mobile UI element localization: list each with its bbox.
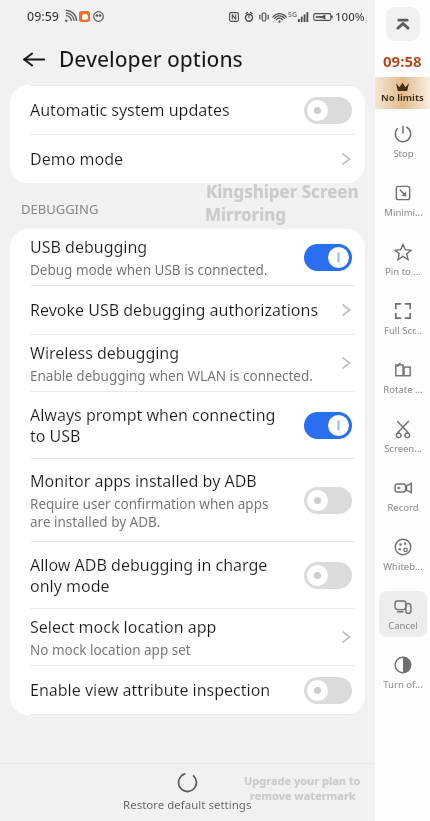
staticText: Debug mode when USB is connected. [30,261,268,279]
staticText: 09:59 [27,8,60,25]
staticText: 100% [335,9,365,25]
button[interactable]: Disabled [304,487,352,514]
staticText: Monitor apps installed by ADB [30,470,257,492]
staticText: Minimi... [384,206,423,219]
staticText: Automatic system updates [30,99,230,121]
button[interactable]: Screen... [379,414,427,460]
staticText: Cancel [388,619,418,632]
staticText: Developer options [59,45,243,74]
button[interactable]: Whiteb... [379,532,427,578]
button[interactable]: Select mock location app [10,609,365,665]
staticText: Pin to ... [385,265,421,278]
staticText: Stop [393,147,414,160]
button[interactable]: Rotate ... [379,355,427,401]
staticText: Rotate ... [383,383,423,396]
button[interactable]: Stop [379,119,427,165]
staticText: Full Scr... [384,324,422,337]
staticText: Require user confirmation when apps are … [30,495,269,531]
staticText: Record [387,501,419,514]
staticText: Revoke USB debugging authorizations [30,299,319,321]
staticText: Wireless debugging [30,342,180,364]
staticText: No mock location app set [30,641,191,659]
button[interactable]: Cancel [379,591,427,637]
button[interactable]: Disabled [304,562,352,589]
staticText: Screen... [384,442,422,455]
staticText: Always prompt when connecting to USB [30,404,276,447]
button[interactable]: Disabled [304,97,352,124]
button[interactable]: Minimi... [379,178,427,224]
staticText: Demo mode [30,148,124,170]
button[interactable]: Demo mode [10,135,365,183]
button[interactable]: Wireless debugging [10,335,365,391]
staticText: 5G [288,10,298,20]
button[interactable]: Back [13,39,53,79]
button[interactable]: Record [379,473,427,519]
staticText: Kingshiper Screen [206,180,359,203]
button[interactable]: Pin to ... [379,237,427,283]
button[interactable]: Enable view attribute inspection [10,666,365,714]
button[interactable]: Enabled [304,412,352,439]
staticText: Mirroring [205,203,287,226]
button[interactable]: Full Scr... [379,296,427,342]
button[interactable]: Disabled [304,677,352,704]
button[interactable]: Monitor apps installed by ADB [10,459,365,541]
staticText: Whiteb... [383,560,423,573]
staticText: Restore default settings [123,797,252,813]
button[interactable]: Enabled [304,244,352,271]
button[interactable]: No limits upgrade [375,77,430,109]
button[interactable]: Restore default settings [107,770,268,815]
button[interactable]: Revoke USB debugging authorizations [10,286,365,334]
staticText: Upgrade your plan to [244,773,361,788]
button[interactable]: Collapse toolbar [386,7,420,41]
button[interactable]: Turn of... [379,650,427,696]
staticText: Enable view attribute inspection [30,679,271,701]
button[interactable]: Automatic system updates [10,86,365,134]
staticText: Allow ADB debugging in charge only mode [30,554,268,597]
staticText: Turn of... [383,678,423,691]
staticText: remove watermark [250,788,356,803]
staticText: Select mock location app [30,616,217,638]
button[interactable]: Allow ADB debugging in charge only mode [10,542,365,608]
staticText: Enable debugging when WLAN is connected. [30,367,313,385]
staticText: USB debugging [30,236,148,258]
button[interactable]: Always prompt when connecting to USB [10,392,365,458]
staticText: No limits [381,91,424,104]
button[interactable]: USB debugging [10,229,365,285]
staticText: DEBUGGING [21,200,99,218]
staticText: 09:58 [383,51,422,71]
